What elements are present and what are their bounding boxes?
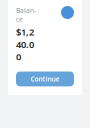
staticText: Balance: [16, 6, 36, 24]
button[interactable]: Continue: [16, 71, 74, 86]
staticText: $1,240.00: [16, 26, 34, 63]
staticText: Continue: [30, 74, 59, 83]
